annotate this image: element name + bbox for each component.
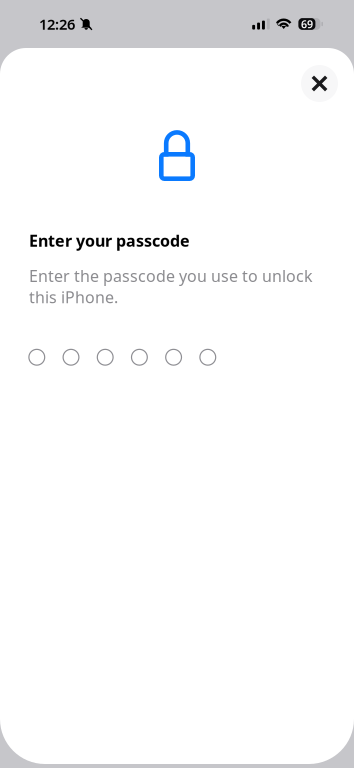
- staticText: Enter the passcode you use to unlock thi…: [29, 265, 313, 308]
- staticText: 69: [301, 17, 313, 31]
- button[interactable]: Close: [301, 65, 338, 102]
- staticText: 12:26: [39, 14, 75, 34]
- staticText: Enter your passcode: [29, 230, 190, 251]
